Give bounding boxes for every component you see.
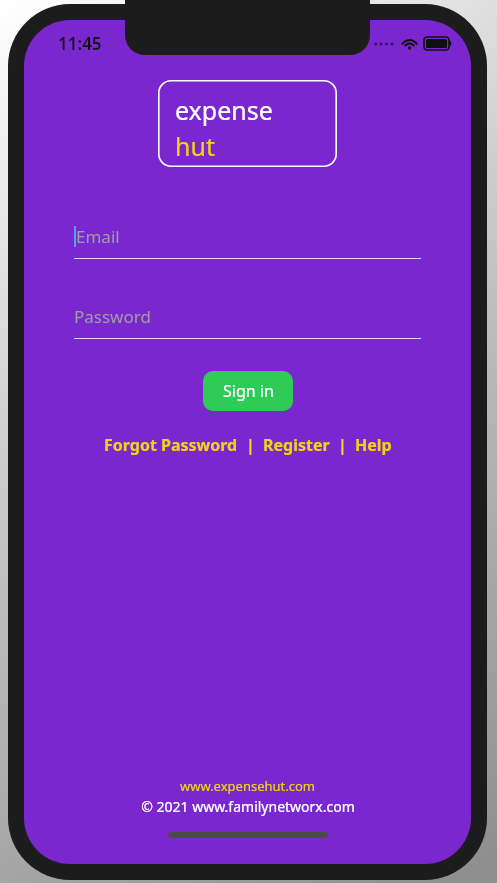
staticText: | <box>246 434 255 456</box>
button[interactable]: Forgot Password <box>104 430 238 460</box>
staticText: © 2021 www.familynetworx.com <box>141 797 355 816</box>
staticText: Forgot Password <box>104 434 238 456</box>
staticText: | <box>338 434 347 456</box>
staticText: Sign in <box>223 380 274 402</box>
staticText: expense <box>175 93 273 127</box>
staticText: 11:45 <box>58 32 102 55</box>
button[interactable]: Register <box>263 430 330 460</box>
staticText: www.expensehut.com <box>180 777 315 795</box>
button[interactable]: Password <box>74 305 421 339</box>
button[interactable]: Help <box>355 430 392 460</box>
button[interactable]: expense <box>158 80 337 167</box>
staticText: Help <box>355 434 392 456</box>
button[interactable]: Email <box>74 225 421 259</box>
button[interactable]: Sign in <box>203 371 293 411</box>
staticText: Password <box>74 305 151 328</box>
staticText: hut <box>175 129 215 163</box>
staticText: Email <box>76 225 120 248</box>
staticText: Register <box>263 434 330 456</box>
